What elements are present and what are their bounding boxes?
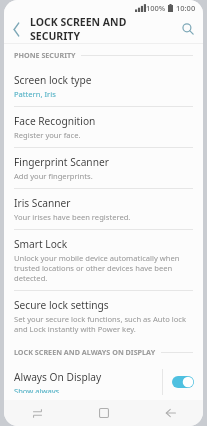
staticText: Add your fingerprints. bbox=[14, 171, 93, 181]
button[interactable]: Home bbox=[71, 400, 137, 426]
button[interactable]: Search bbox=[173, 15, 203, 43]
staticText: Unlock your mobile device automatically … bbox=[14, 253, 191, 283]
staticText: Register your face. bbox=[14, 130, 81, 140]
staticText: 10:00 bbox=[176, 3, 196, 13]
button[interactable]: Always On Display toggle bbox=[163, 365, 203, 399]
button[interactable]: Screen lock type bbox=[4, 66, 203, 106]
staticText: Your irises have been registered. bbox=[14, 212, 131, 222]
staticText: Smart Lock bbox=[14, 237, 68, 251]
button[interactable]: Always On Display bbox=[4, 363, 203, 400]
staticText: Secure lock settings bbox=[14, 298, 109, 312]
staticText: Screen lock type bbox=[14, 73, 92, 87]
button[interactable]: Back bbox=[4, 15, 30, 43]
button[interactable]: Iris Scanner bbox=[4, 189, 203, 229]
staticText: LOCK SCREEN AND ALWAYS ON DISPLAY bbox=[14, 347, 156, 357]
button[interactable]: Fingerprint Scanner bbox=[4, 148, 203, 188]
staticText: PHONE SECURITY bbox=[14, 50, 76, 60]
staticText: Face Recognition bbox=[14, 114, 96, 128]
staticText: 100% bbox=[146, 3, 166, 13]
button[interactable]: Secure lock settings bbox=[4, 291, 203, 341]
button[interactable]: Smart Lock bbox=[4, 230, 203, 290]
button[interactable]: Recents bbox=[4, 400, 71, 426]
staticText: Always On Display bbox=[14, 370, 102, 384]
staticText: Set your secure lock functions, such as … bbox=[14, 314, 191, 334]
staticText: Show always bbox=[14, 386, 60, 393]
staticText: Pattern, Iris bbox=[14, 89, 56, 99]
staticText: Iris Scanner bbox=[14, 196, 71, 210]
staticText: LOCK SCREEN AND SECURITY bbox=[30, 15, 173, 43]
button[interactable]: Back bbox=[137, 400, 203, 426]
staticText: Fingerprint Scanner bbox=[14, 155, 109, 169]
button[interactable]: Face Recognition bbox=[4, 107, 203, 147]
